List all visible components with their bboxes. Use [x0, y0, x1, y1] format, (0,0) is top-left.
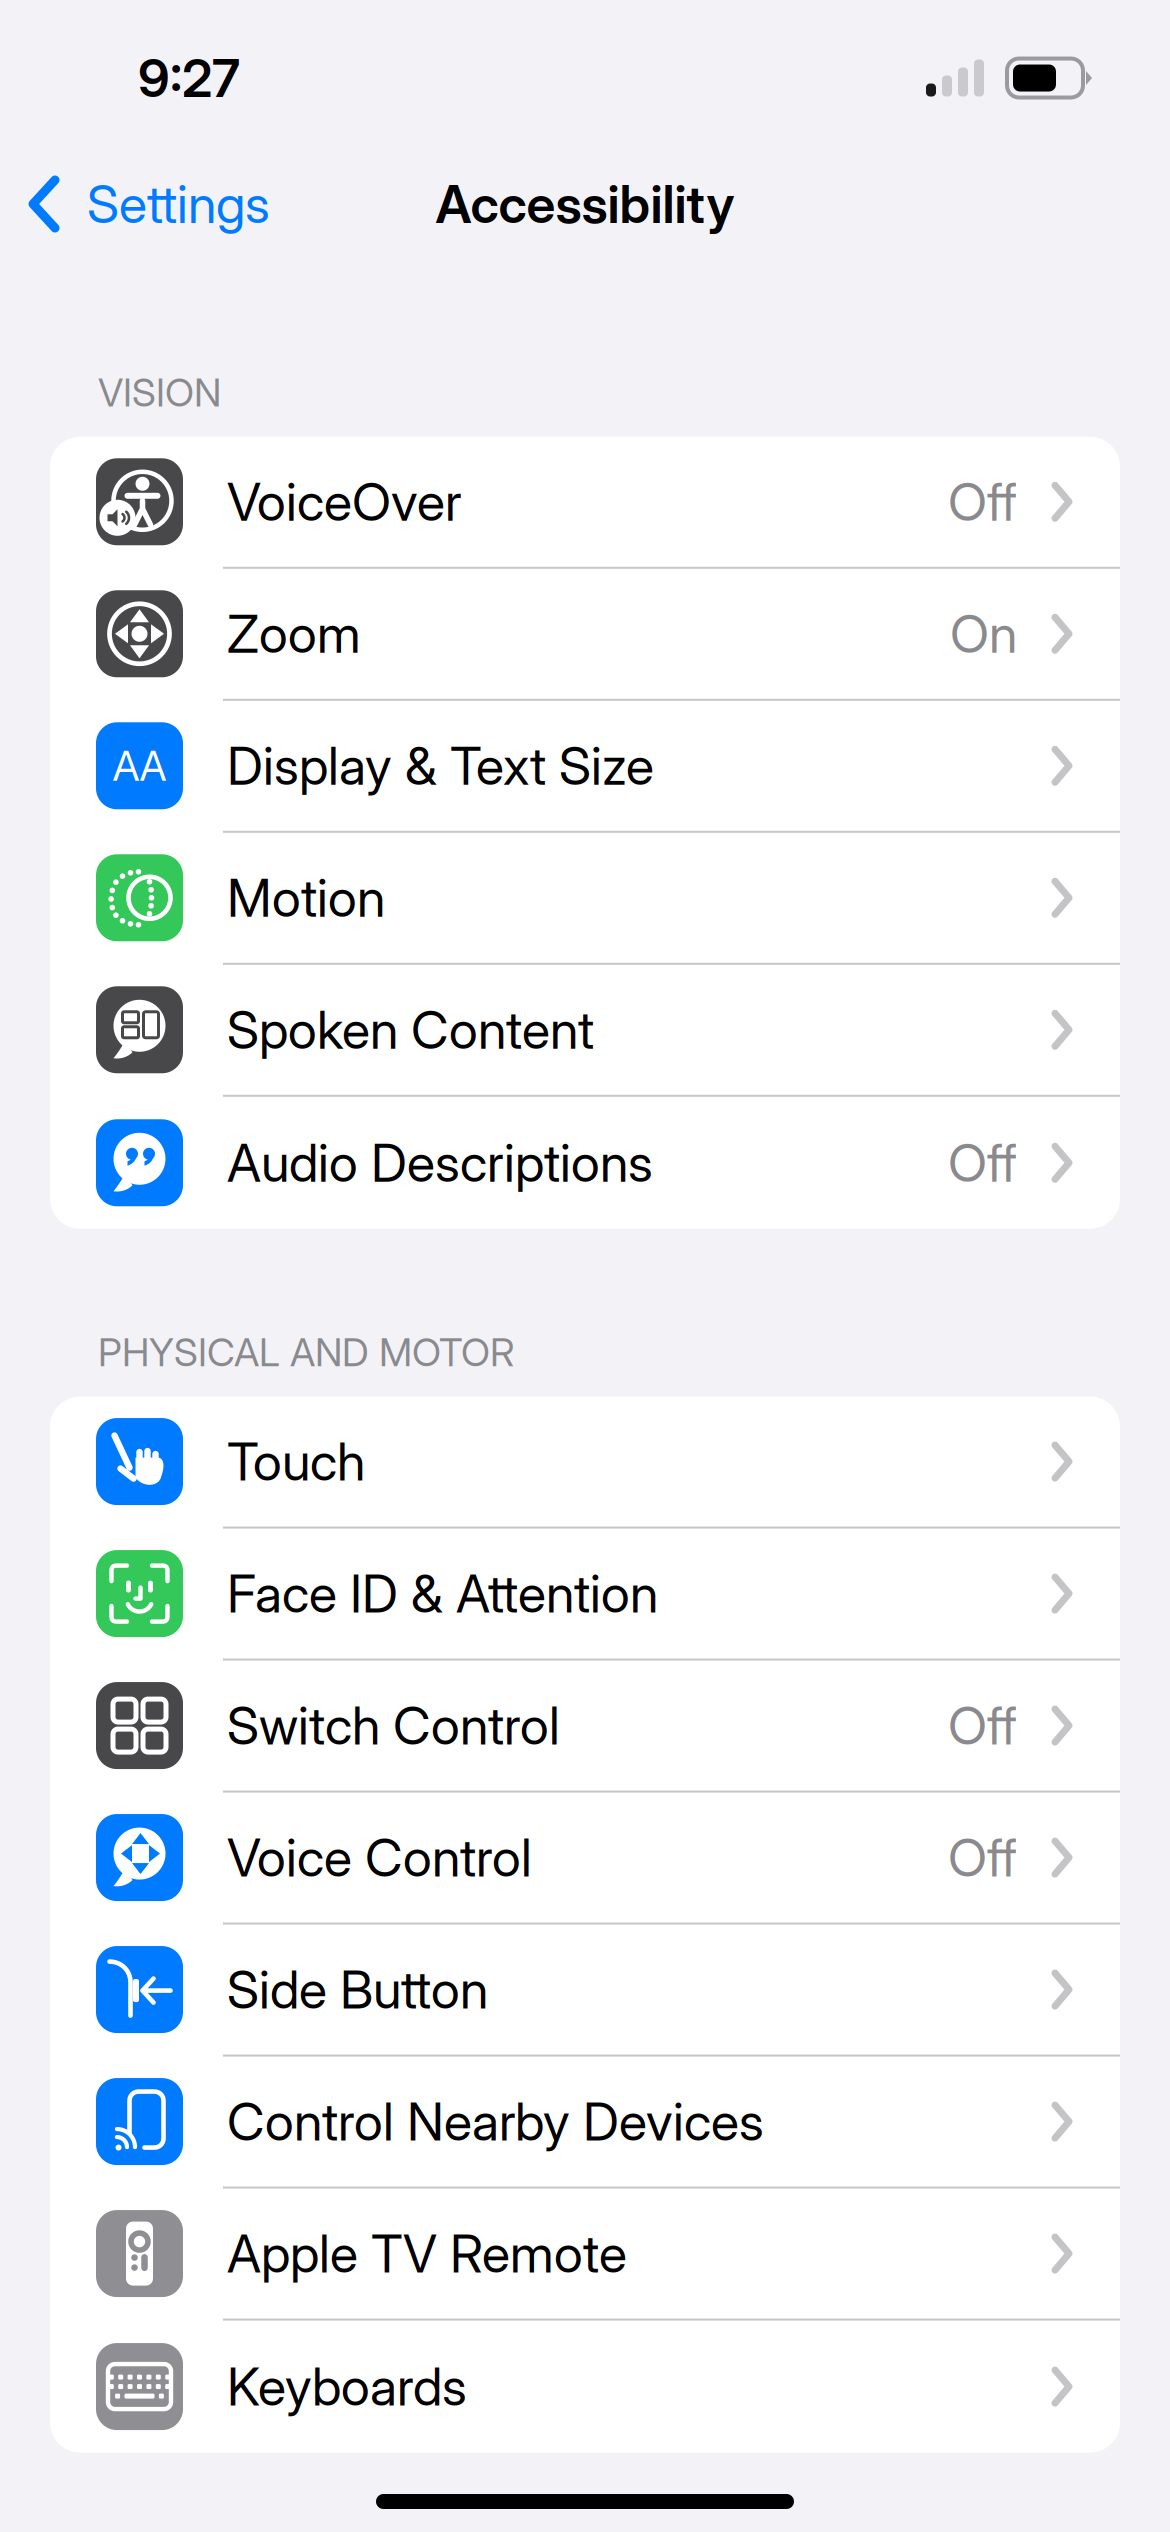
- staticText: 9:27: [138, 46, 240, 109]
- button[interactable]: Switch Control: [50, 1661, 1120, 1793]
- button[interactable]: Apple TV Remote: [50, 2189, 1120, 2321]
- staticText: PHYSICAL AND MOTOR: [98, 1329, 514, 1376]
- staticText: VISION: [98, 369, 221, 416]
- staticText: AA: [112, 741, 166, 791]
- staticText: Accessibility: [435, 172, 734, 235]
- staticText: Off: [948, 470, 1017, 533]
- button[interactable]: VoiceOver: [50, 437, 1120, 569]
- button[interactable]: Face ID & Attention: [50, 1529, 1120, 1661]
- staticText: Off: [948, 1131, 1017, 1194]
- button[interactable]: Settings: [0, 154, 288, 253]
- staticText: Motion: [227, 866, 385, 929]
- staticText: Control Nearby Devices: [227, 2090, 764, 2153]
- staticText: Keyboards: [227, 2355, 467, 2418]
- button[interactable]: Control Nearby Devices: [50, 2057, 1120, 2189]
- button[interactable]: Audio Descriptions: [50, 1097, 1120, 1229]
- button[interactable]: Spoken Content: [50, 965, 1120, 1097]
- staticText: Spoken Content: [227, 998, 594, 1061]
- staticText: Face ID & Attention: [227, 1562, 658, 1625]
- staticText: Zoom: [227, 602, 361, 665]
- staticText: Off: [948, 1694, 1017, 1757]
- staticText: Audio Descriptions: [227, 1131, 653, 1194]
- staticText: Touch: [227, 1430, 365, 1493]
- staticText: VoiceOver: [227, 470, 462, 533]
- staticText: Apple TV Remote: [227, 2222, 627, 2285]
- staticText: Voice Control: [227, 1826, 532, 1889]
- staticText: Settings: [87, 172, 270, 235]
- staticText: On: [950, 602, 1017, 665]
- button[interactable]: AA: [50, 701, 1120, 833]
- button[interactable]: Zoom: [50, 569, 1120, 701]
- button[interactable]: Motion: [50, 833, 1120, 965]
- staticText: Switch Control: [227, 1694, 560, 1757]
- staticText: Display & Text Size: [227, 734, 654, 797]
- button[interactable]: Side Button: [50, 1925, 1120, 2057]
- staticText: Off: [948, 1826, 1017, 1889]
- button[interactable]: Keyboards: [50, 2321, 1120, 2453]
- staticText: Side Button: [227, 1958, 488, 2021]
- button[interactable]: Touch: [50, 1397, 1120, 1529]
- button[interactable]: Voice Control: [50, 1793, 1120, 1925]
